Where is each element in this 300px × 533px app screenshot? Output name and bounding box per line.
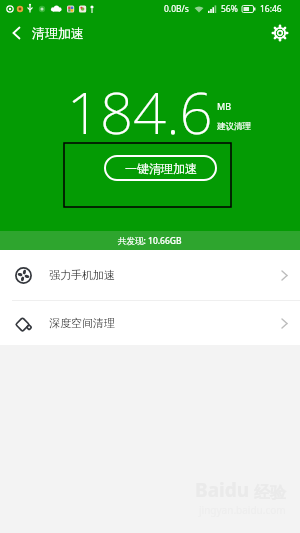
staticText: 经验	[254, 483, 286, 503]
staticText: 建议清理	[217, 121, 251, 132]
button[interactable]: 一键清理加速	[104, 155, 217, 181]
staticText: 一键清理加速	[125, 161, 197, 176]
button[interactable]	[260, 18, 300, 47]
button[interactable]	[0, 18, 32, 47]
staticText: Baidu	[195, 477, 250, 503]
staticText: 清理加速	[32, 25, 84, 41]
staticText: 184.6	[67, 72, 213, 151]
staticText: MB	[217, 100, 232, 112]
button[interactable]: 深度空间清理	[0, 301, 300, 345]
staticText: 56%	[221, 3, 238, 15]
button[interactable]: 强力手机加速	[0, 250, 300, 300]
staticText: 0.0B/s	[164, 3, 189, 15]
staticText: 深度空间清理	[49, 316, 115, 330]
staticText: 共发现: 10.66GB	[118, 235, 182, 247]
staticText: 强力手机加速	[49, 268, 115, 282]
staticText: 16:46	[260, 3, 282, 15]
